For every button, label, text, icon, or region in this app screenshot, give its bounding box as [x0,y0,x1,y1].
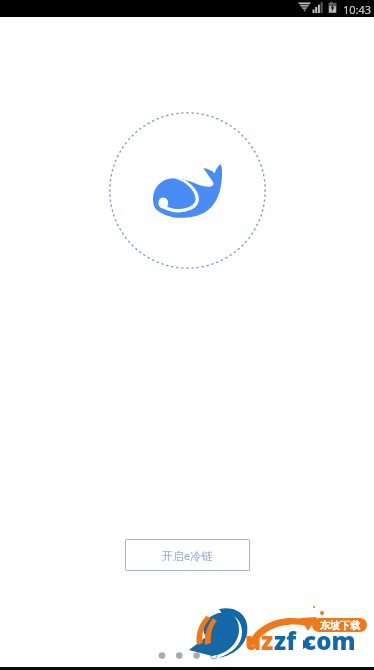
staticText: 开启e冷链 [162,548,213,563]
staticText: com [297,624,356,657]
button[interactable]: 开启e冷链 [125,539,250,571]
staticText: 10:43 [343,2,372,17]
staticText: zf [274,624,297,657]
staticText: 东坡下载 [320,619,360,632]
staticText: uz [245,624,274,657]
